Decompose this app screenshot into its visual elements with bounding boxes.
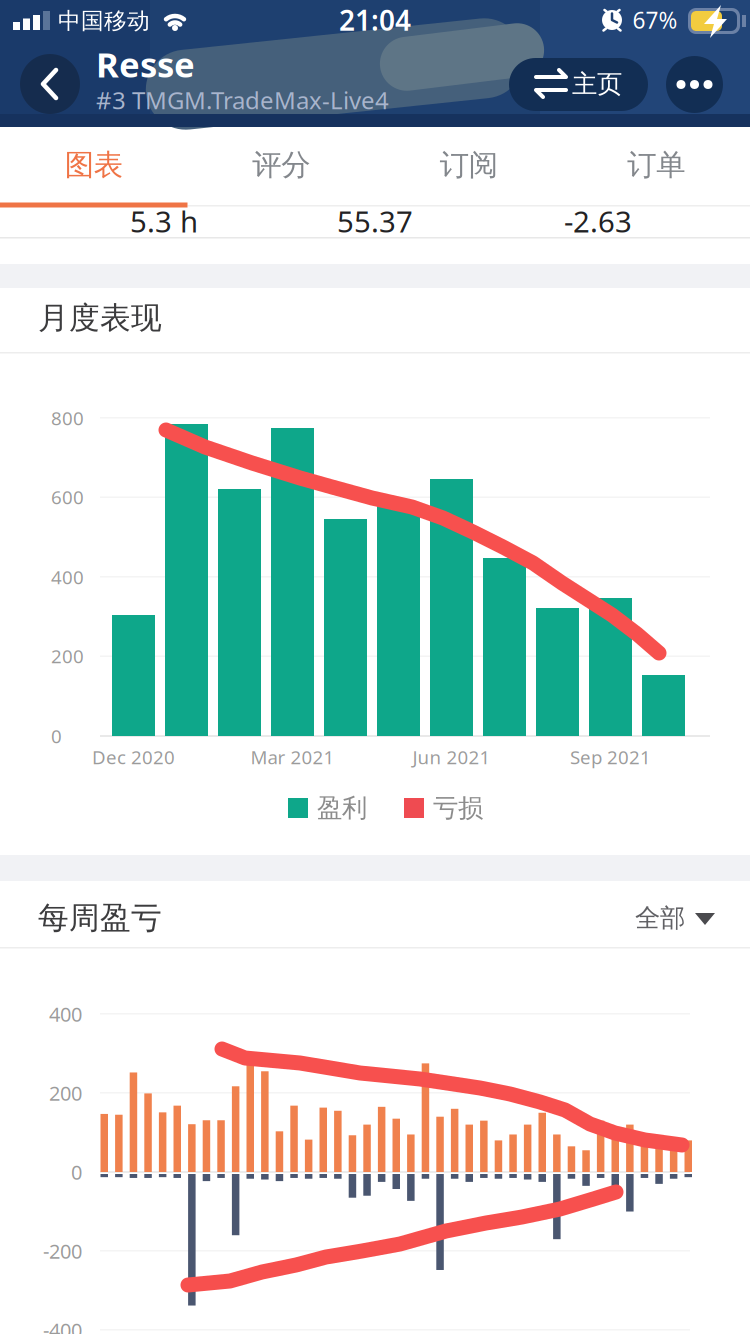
button[interactable]: 评分 xyxy=(0,0,187,76)
staticText: 800 xyxy=(51,406,84,430)
staticText: 每周盈亏 xyxy=(38,899,162,937)
staticText: 400 xyxy=(51,565,84,589)
staticText: 主页 xyxy=(572,68,622,99)
staticText: -2.63 xyxy=(564,201,632,240)
staticText: 55.37 xyxy=(337,201,413,240)
staticText: 订单 xyxy=(627,147,685,183)
staticText: Mar 2021 xyxy=(250,745,334,769)
staticText: 月度表现 xyxy=(38,299,162,337)
staticText: 67% xyxy=(632,5,677,35)
staticText: -200 xyxy=(43,1238,82,1264)
staticText: 5.3 h xyxy=(130,201,198,240)
button[interactable]: 订阅 xyxy=(0,0,187,76)
staticText: Sep 2021 xyxy=(570,745,651,769)
button[interactable]: 全部 xyxy=(0,0,120,44)
button[interactable]: 订单 xyxy=(0,0,187,76)
staticText: 全部 xyxy=(635,902,685,933)
button[interactable]: 主页 xyxy=(0,0,139,53)
staticText: 200 xyxy=(49,1080,82,1106)
staticText: 评分 xyxy=(252,147,310,183)
staticText: 400 xyxy=(49,1001,82,1027)
staticText: #3 TMGM.TradeMax-Live4 xyxy=(96,84,389,116)
staticText: Resse xyxy=(96,41,195,87)
staticText: 0 xyxy=(51,724,62,748)
staticText: 0 xyxy=(71,1159,82,1185)
staticText: 图表 xyxy=(65,147,123,183)
staticText: 中国移动 xyxy=(58,7,150,35)
staticText: 200 xyxy=(51,644,84,668)
button[interactable]: Back xyxy=(0,0,60,60)
button[interactable]: More xyxy=(0,0,57,57)
staticText: 订阅 xyxy=(440,147,498,183)
staticText: -400 xyxy=(43,1317,82,1334)
staticText: Jun 2021 xyxy=(412,745,490,769)
button[interactable]: 图表 xyxy=(0,0,187,76)
staticText: 盈利 xyxy=(317,792,367,823)
staticText: Dec 2020 xyxy=(92,745,175,769)
staticText: 600 xyxy=(51,485,84,509)
staticText: 亏损 xyxy=(433,792,483,823)
staticText: 21:04 xyxy=(339,1,411,39)
